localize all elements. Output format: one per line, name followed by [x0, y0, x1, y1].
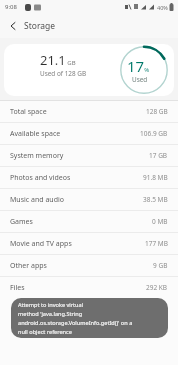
button[interactable]: Photos and videos: [0, 167, 178, 188]
button[interactable]: Music and audio: [0, 189, 178, 210]
staticText: Available space: [10, 129, 61, 139]
button[interactable]: Storage: [0, 14, 178, 38]
staticText: 38.5 MB: [143, 195, 168, 204]
staticText: Files: [10, 283, 25, 293]
staticText: Used of 128 GB: [40, 69, 87, 78]
staticText: Games: [10, 217, 33, 227]
button[interactable]: System memory: [0, 145, 178, 166]
staticText: 21.1 GB: [40, 51, 76, 69]
button[interactable]: Total space: [0, 101, 178, 122]
staticText: 17 GB: [149, 151, 168, 160]
staticText: 91.8 MB: [143, 173, 168, 182]
staticText: 177 MB: [145, 239, 168, 248]
button[interactable]: Other apps: [0, 255, 178, 276]
staticText: Attempt to invoke virtual method 'java.l…: [18, 301, 133, 335]
staticText: Photos and videos: [10, 173, 71, 183]
button[interactable]: Files: [0, 277, 178, 298]
button[interactable]: [10, 22, 16, 30]
staticText: Used: [132, 75, 148, 84]
staticText: System memory: [10, 151, 64, 161]
staticText: Music and audio: [10, 195, 64, 205]
staticText: Movie and TV apps: [10, 239, 72, 249]
staticText: 17%: [127, 56, 150, 76]
staticText: 9:08: [5, 3, 17, 11]
button[interactable]: 21.1 GB: [4, 44, 174, 96]
staticText: 128 GB: [146, 107, 168, 116]
button[interactable]: Movie and TV apps: [0, 233, 178, 254]
staticText: 0 MB: [152, 217, 168, 226]
staticText: 292 KB: [146, 283, 168, 292]
staticText: Other apps: [10, 261, 47, 271]
button[interactable]: Available space: [0, 123, 178, 144]
staticText: Total space: [10, 107, 47, 117]
staticText: Storage: [24, 20, 56, 32]
staticText: 9 GB: [153, 261, 168, 270]
staticText: 106.9 GB: [140, 129, 168, 138]
staticText: 40%: [157, 4, 168, 11]
button[interactable]: Games: [0, 211, 178, 232]
